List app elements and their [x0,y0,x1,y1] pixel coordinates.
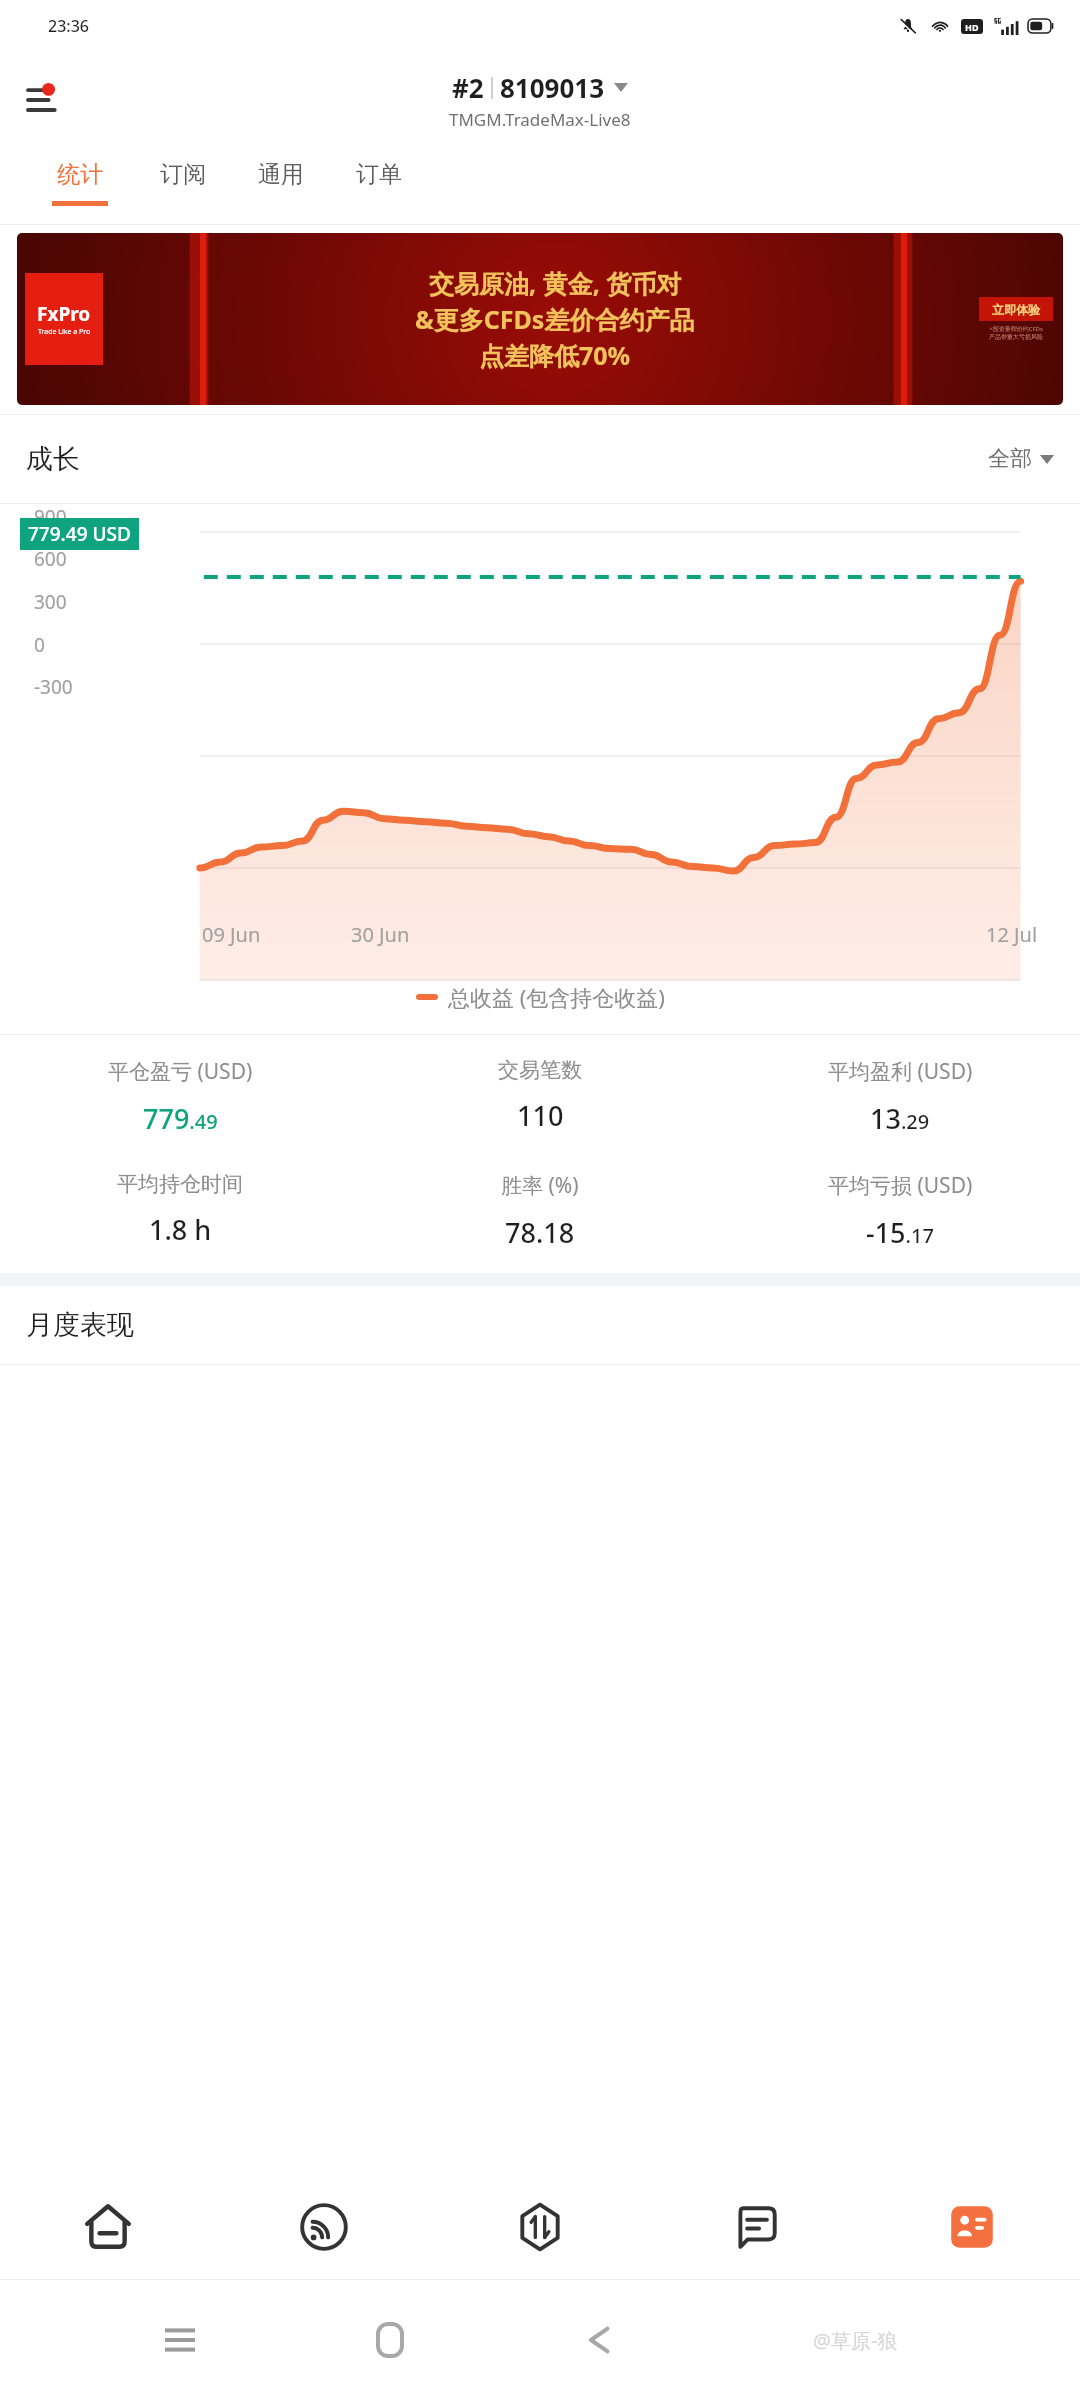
staticText: 订单 [356,160,402,189]
button[interactable]: #2 [449,70,631,131]
button[interactable]: 通用 [232,148,330,224]
button[interactable]: FxPro [17,233,1063,405]
button[interactable]: 交易笔数 [360,1057,720,1134]
staticText: @草原-狼 [813,2327,898,2354]
button[interactable]: 全部 [988,445,1054,473]
staticText: HD [965,21,979,33]
staticText: 平仓盈亏 (USD) [108,1057,253,1086]
staticText: 点差降低70% [479,338,631,372]
staticText: 779.49 [143,1100,218,1137]
staticText: 0 [34,632,45,658]
button[interactable]: 平均持仓时间 [0,1171,360,1248]
staticText: 779.49 USD [28,521,131,547]
button[interactable]: Profile [864,2175,1080,2279]
staticText: 立即体验 [992,302,1040,317]
staticText: 12 Jul [986,921,1038,948]
button[interactable]: 订单 [330,148,428,224]
staticText: 产品带重大亏损风险 [989,333,1043,341]
staticText: -15.17 [866,1214,934,1251]
staticText: &更多CFDs差价合约产品 [415,302,695,336]
button[interactable]: Menu [16,72,72,128]
staticText: 交易原油, 黄金, 货币对 [429,266,682,300]
staticText: 月度表现 [26,1308,134,1342]
button[interactable]: Home [360,2310,420,2370]
staticText: 30 Jun [351,921,410,948]
staticText: 交易笔数 [498,1057,582,1083]
staticText: 订阅 [160,160,206,189]
button[interactable]: 立即体验 [979,297,1053,321]
staticText: -300 [34,674,73,700]
staticText: 1.8 h [149,1211,212,1248]
staticText: #2 [452,70,484,105]
staticText: TMGM.TradeMax-Live8 [449,108,631,131]
staticText: 78.18 [505,1214,575,1251]
staticText: ^投资量桿价约CFDs [989,325,1043,333]
button[interactable]: 平均盈利 (USD) [720,1057,1080,1137]
button[interactable]: Home [0,2175,216,2279]
button[interactable]: Back [570,2310,630,2370]
staticText: 8109013 [500,70,605,105]
button[interactable]: 平仓盈亏 (USD) [0,1057,360,1137]
staticText: 600 [34,546,67,572]
staticText: 平均持仓时间 [117,1171,243,1197]
button[interactable]: Recents [150,2310,210,2370]
staticText: 900 [34,504,67,530]
button[interactable]: 胜率 (%) [360,1171,720,1251]
button[interactable]: Signals [216,2175,432,2279]
button[interactable]: Trade [432,2175,648,2279]
staticText: Trade Like a Pro [38,327,91,337]
staticText: 110 [517,1097,564,1134]
staticText: 平均盈利 (USD) [828,1057,973,1086]
staticText: 胜率 (%) [501,1171,579,1200]
button[interactable]: 平均亏损 (USD) [720,1171,1080,1251]
button[interactable]: 统计 [26,148,134,224]
staticText: 09 Jun [202,921,261,948]
staticText: 总收益 (包含持仓收益) [448,982,665,1012]
staticText: 平均亏损 (USD) [828,1171,973,1200]
staticText: 通用 [258,160,304,189]
staticText: 23:36 [48,15,89,37]
staticText: 成长 [26,442,80,476]
button[interactable]: 订阅 [134,148,232,224]
button[interactable]: Chat [648,2175,864,2279]
staticText: 全部 [988,445,1032,473]
staticText: 统计 [57,160,103,189]
staticText: 300 [34,589,67,615]
staticText: 13.29 [870,1100,930,1137]
staticText: FxPro [37,301,91,327]
